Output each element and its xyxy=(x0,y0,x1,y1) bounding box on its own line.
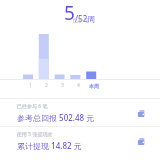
staticText: 3 xyxy=(61,82,64,89)
staticText: 4 xyxy=(77,82,80,89)
staticText: 已经参与 6 笔 xyxy=(17,103,48,110)
staticText: 本周 xyxy=(89,83,99,89)
button[interactable]: 使用 5 张提现金 xyxy=(0,127,160,154)
staticText: /52周 xyxy=(75,13,96,24)
staticText: 参考总回报 502.48 元 xyxy=(17,112,95,123)
staticText: 1 xyxy=(29,82,32,89)
staticText: 使用 5 张提现金 xyxy=(17,131,53,138)
staticText: 5 xyxy=(64,0,75,26)
staticText: 累计提现 14.82 元 xyxy=(17,140,82,151)
other: 查看参考总回报详情 xyxy=(134,106,148,120)
staticText: 2 xyxy=(45,82,48,89)
button[interactable]: 已经参与 6 笔 xyxy=(0,99,160,126)
other: 查看累计提现详情 xyxy=(134,134,148,148)
staticText: 已参与 xyxy=(73,17,88,23)
